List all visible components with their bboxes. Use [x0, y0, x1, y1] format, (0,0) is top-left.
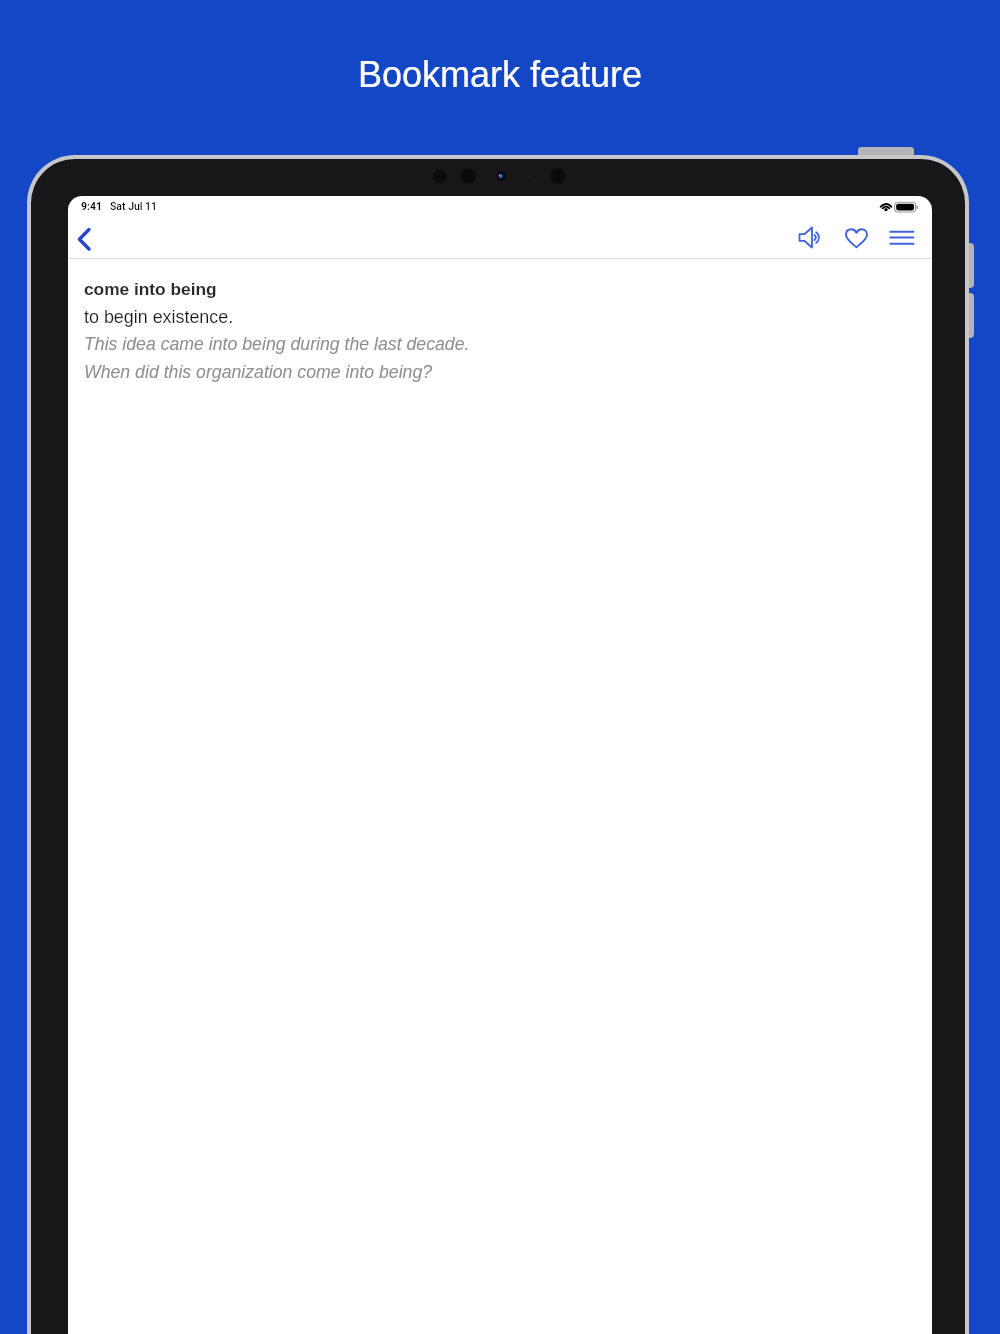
staticText: When did this organization come into bei…	[84, 362, 433, 382]
staticText: come into being	[84, 279, 217, 298]
staticText: 9:41	[81, 200, 103, 212]
button[interactable]	[790, 220, 828, 254]
staticText: to begin existence.	[84, 307, 234, 327]
staticText: This idea came into being during the las…	[84, 334, 470, 354]
staticText: Bookmark feature	[0, 54, 1000, 94]
staticText: Sat Jul 11	[110, 200, 158, 212]
button[interactable]	[882, 220, 920, 254]
button[interactable]	[70, 220, 108, 258]
button[interactable]	[838, 220, 876, 254]
